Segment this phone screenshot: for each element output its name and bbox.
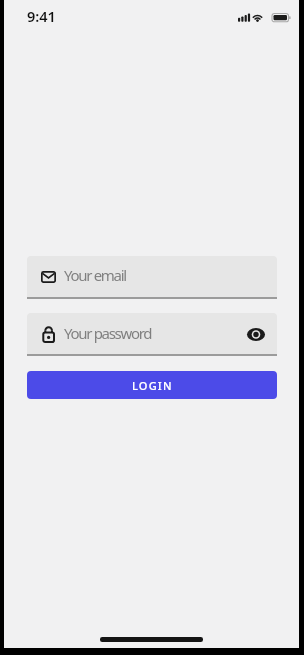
button[interactable]: LOGIN <box>27 371 277 399</box>
staticText: Your email <box>64 265 126 285</box>
staticText: 9:41 <box>27 6 56 26</box>
staticText: LOGIN <box>132 378 173 393</box>
staticText: Your password <box>64 323 152 343</box>
button[interactable]: Your password <box>27 313 277 356</box>
button[interactable]: Your email <box>27 256 277 299</box>
